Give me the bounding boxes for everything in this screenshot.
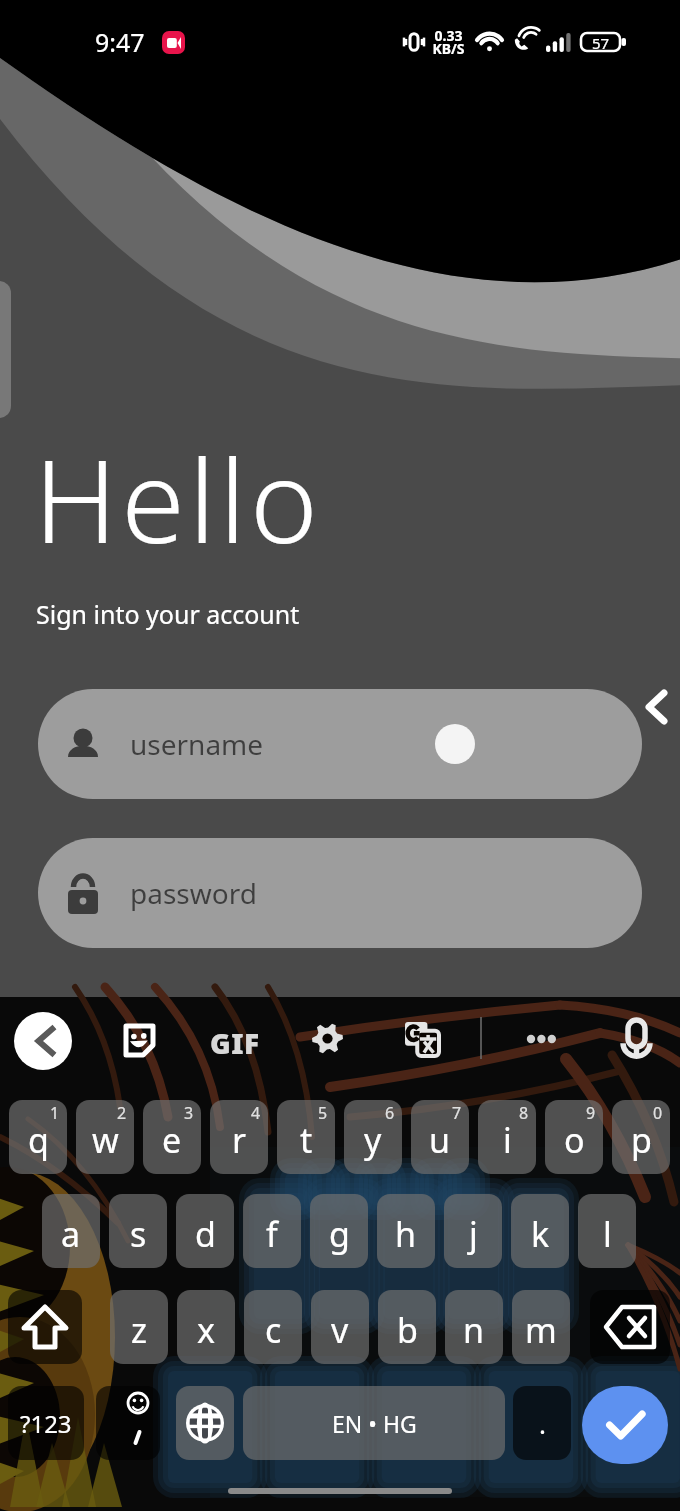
button[interactable]: d: [176, 1194, 234, 1268]
button[interactable]: u: [411, 1100, 469, 1174]
staticText: 9: [586, 1102, 596, 1124]
button[interactable]: Translate: [405, 1022, 439, 1056]
staticText: o: [564, 1117, 585, 1163]
button[interactable]: o: [545, 1100, 603, 1174]
button[interactable]: e: [143, 1100, 201, 1174]
staticText: k: [531, 1211, 550, 1257]
button[interactable]: h: [377, 1194, 435, 1268]
staticText: ?123: [20, 1407, 72, 1440]
staticText: q: [28, 1117, 49, 1163]
button[interactable]: Emoji: [96, 1386, 160, 1460]
staticText: 9:47: [95, 25, 145, 59]
staticText: username: [130, 725, 264, 763]
button[interactable]: .: [513, 1386, 571, 1460]
staticText: n: [463, 1307, 485, 1353]
staticText: m: [525, 1307, 557, 1353]
button[interactable]: x: [177, 1290, 235, 1364]
button[interactable]: r: [210, 1100, 268, 1174]
staticText: s: [130, 1211, 147, 1257]
staticText: Sign into your account: [36, 597, 300, 631]
button[interactable]: username: [38, 689, 642, 799]
button[interactable]: Backspace: [590, 1290, 670, 1364]
staticText: 7: [452, 1102, 462, 1124]
button[interactable]: l: [578, 1194, 636, 1268]
button[interactable]: s: [109, 1194, 167, 1268]
button[interactable]: f: [243, 1194, 301, 1268]
button[interactable]: a: [42, 1194, 100, 1268]
button[interactable]: t: [277, 1100, 335, 1174]
button[interactable]: m: [512, 1290, 570, 1364]
button[interactable]: n: [445, 1290, 503, 1364]
button[interactable]: Stickers: [122, 1024, 155, 1057]
staticText: x: [197, 1307, 215, 1353]
button[interactable]: w: [76, 1100, 134, 1174]
button[interactable]: g: [310, 1194, 368, 1268]
staticText: l: [603, 1211, 612, 1257]
button[interactable]: c: [244, 1290, 302, 1364]
button[interactable]: EN • HG: [243, 1386, 505, 1460]
button[interactable]: k: [511, 1194, 569, 1268]
button[interactable]: j: [444, 1194, 502, 1268]
button[interactable]: Enter: [582, 1386, 668, 1464]
staticText: 0.33 KB/S: [432, 26, 465, 58]
staticText: 57: [592, 33, 610, 50]
staticText: z: [131, 1307, 147, 1353]
button[interactable]: Language: [176, 1386, 234, 1460]
staticText: p: [631, 1117, 652, 1163]
staticText: j: [469, 1211, 478, 1257]
staticText: EN • HG: [332, 1408, 417, 1439]
staticText: t: [300, 1117, 313, 1163]
staticText: 0: [653, 1102, 663, 1124]
staticText: 2: [117, 1102, 127, 1124]
staticText: 6: [385, 1102, 395, 1124]
staticText: w: [92, 1117, 119, 1163]
button[interactable]: p: [612, 1100, 670, 1174]
button[interactable]: Settings: [312, 1023, 343, 1054]
staticText: Hello: [34, 420, 322, 577]
button[interactable]: password: [38, 838, 642, 948]
staticText: d: [195, 1211, 216, 1257]
staticText: f: [266, 1211, 278, 1257]
staticText: h: [395, 1211, 417, 1257]
button[interactable]: ?123: [8, 1386, 84, 1460]
staticText: c: [265, 1307, 282, 1353]
staticText: .: [539, 1406, 546, 1441]
staticText: 4: [251, 1102, 261, 1124]
staticText: a: [61, 1211, 81, 1257]
button[interactable]: GIF: [210, 1024, 260, 1062]
button[interactable]: More options: [516, 1025, 566, 1053]
staticText: GIF: [210, 1024, 260, 1062]
button[interactable]: z: [110, 1290, 168, 1364]
staticText: 5: [318, 1102, 328, 1124]
button[interactable]: Shift: [8, 1290, 82, 1364]
staticText: u: [429, 1117, 451, 1163]
staticText: e: [162, 1117, 182, 1163]
staticText: password: [130, 874, 257, 912]
button[interactable]: q: [9, 1100, 67, 1174]
staticText: 3: [184, 1102, 194, 1124]
button[interactable]: y: [344, 1100, 402, 1174]
staticText: 8: [519, 1102, 529, 1124]
button[interactable]: b: [378, 1290, 436, 1364]
staticText: i: [503, 1117, 512, 1163]
staticText: v: [331, 1307, 349, 1353]
staticText: g: [329, 1211, 350, 1257]
staticText: 1: [50, 1102, 60, 1124]
staticText: b: [397, 1307, 418, 1353]
button[interactable]: Voice input: [624, 1019, 649, 1059]
button[interactable]: v: [311, 1290, 369, 1364]
staticText: y: [364, 1117, 382, 1163]
button[interactable]: i: [478, 1100, 536, 1174]
button[interactable]: Back: [14, 1012, 72, 1070]
staticText: r: [232, 1117, 247, 1163]
